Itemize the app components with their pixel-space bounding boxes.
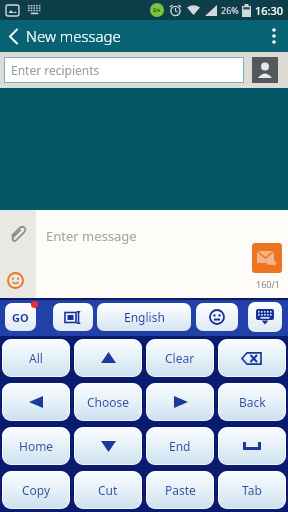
staticText: New message bbox=[26, 26, 121, 46]
button[interactable] bbox=[196, 303, 238, 331]
button[interactable]: Copy bbox=[2, 471, 70, 509]
button[interactable] bbox=[4, 220, 32, 248]
button[interactable] bbox=[252, 243, 282, 273]
button[interactable]: GO bbox=[5, 303, 36, 331]
button[interactable]: Home bbox=[2, 427, 70, 465]
button[interactable] bbox=[252, 57, 278, 83]
button[interactable]: English bbox=[97, 303, 191, 331]
button[interactable] bbox=[218, 427, 286, 465]
staticText: Paste bbox=[165, 482, 196, 498]
button[interactable]: Tab bbox=[218, 471, 286, 509]
button[interactable] bbox=[74, 427, 142, 465]
staticText: Cut bbox=[98, 482, 118, 498]
button[interactable]: All bbox=[2, 339, 70, 377]
staticText: Clear bbox=[165, 350, 195, 366]
staticText: Tab bbox=[242, 482, 262, 498]
button[interactable] bbox=[3, 268, 27, 292]
button[interactable] bbox=[248, 302, 282, 332]
button[interactable] bbox=[74, 339, 142, 377]
button[interactable]: Paste bbox=[146, 471, 214, 509]
staticText: GO bbox=[12, 310, 29, 325]
staticText: 160/1 bbox=[256, 278, 280, 290]
staticText: Choose bbox=[87, 394, 130, 410]
button[interactable] bbox=[218, 339, 286, 377]
staticText: Copy bbox=[22, 482, 51, 498]
staticText: Home bbox=[19, 438, 54, 454]
button[interactable] bbox=[260, 20, 288, 52]
staticText: Enter recipients bbox=[11, 62, 100, 78]
staticText: All bbox=[29, 350, 43, 366]
button[interactable] bbox=[2, 383, 70, 421]
staticText: Back bbox=[239, 394, 266, 410]
staticText: En bbox=[153, 6, 161, 14]
button[interactable]: Cut bbox=[74, 471, 142, 509]
button[interactable]: Back bbox=[218, 383, 286, 421]
staticText: 16:30 bbox=[255, 3, 284, 18]
staticText: English bbox=[124, 309, 165, 325]
staticText: 26% bbox=[221, 4, 239, 16]
staticText: Enter message bbox=[46, 227, 137, 245]
button[interactable] bbox=[146, 383, 214, 421]
staticText: End bbox=[169, 438, 191, 454]
button[interactable]: Enter recipients bbox=[4, 57, 244, 83]
button[interactable] bbox=[0, 20, 26, 52]
button[interactable]: End bbox=[146, 427, 214, 465]
button[interactable]: Clear bbox=[146, 339, 214, 377]
button[interactable] bbox=[53, 303, 93, 331]
button[interactable]: Choose bbox=[74, 383, 142, 421]
